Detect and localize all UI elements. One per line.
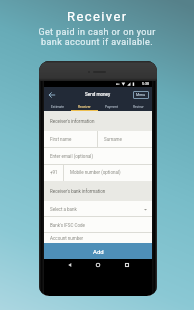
button[interactable]: +91 — [44, 164, 63, 181]
button[interactable]: Mobile number (optional) — [64, 164, 152, 181]
staticText: Receiver — [67, 9, 128, 24]
staticText: Select a bank — [50, 207, 77, 212]
button[interactable]: Surname — [98, 131, 152, 148]
button[interactable]: Recents — [124, 262, 130, 268]
staticText: Receiver's bank information — [50, 189, 106, 194]
staticText: Review — [133, 105, 144, 109]
staticText: +91 — [50, 170, 58, 175]
staticText: Get paid in cash or on your bank account… — [38, 27, 156, 47]
button[interactable]: Estimate — [44, 102, 71, 111]
button[interactable]: First name — [44, 131, 97, 148]
button[interactable]: Back — [48, 91, 56, 99]
button[interactable]: Add — [44, 243, 152, 259]
staticText: Estimate — [51, 105, 64, 109]
staticText: Add — [93, 248, 104, 255]
button[interactable]: Account number — [44, 233, 152, 244]
button[interactable]: Menu — [136, 93, 146, 97]
button[interactable]: Receiver — [71, 102, 98, 111]
button[interactable]: Back — [67, 262, 73, 268]
staticText: Bank's IFSC Code — [50, 223, 85, 228]
button[interactable]: Select a bank — [44, 201, 152, 217]
staticText: 5:38 — [142, 82, 149, 86]
staticText: First name — [50, 137, 72, 142]
staticText: Mobile number (optional) — [70, 170, 121, 175]
staticText: Send money — [85, 92, 111, 97]
button[interactable]: Review — [125, 102, 152, 111]
staticText: Surname — [104, 137, 122, 142]
staticText: Enter email (optional) — [50, 154, 93, 159]
staticText: Receiver — [78, 105, 91, 109]
button[interactable]: Enter email (optional) — [44, 148, 152, 165]
staticText: Payment — [105, 105, 118, 109]
button[interactable]: Home — [95, 262, 101, 268]
staticText: Account number — [50, 236, 84, 241]
button[interactable]: Payment — [98, 102, 125, 111]
button[interactable]: Bank's IFSC Code — [44, 217, 152, 233]
staticText: Receiver's information — [50, 119, 95, 124]
staticText: Menu — [136, 93, 146, 97]
